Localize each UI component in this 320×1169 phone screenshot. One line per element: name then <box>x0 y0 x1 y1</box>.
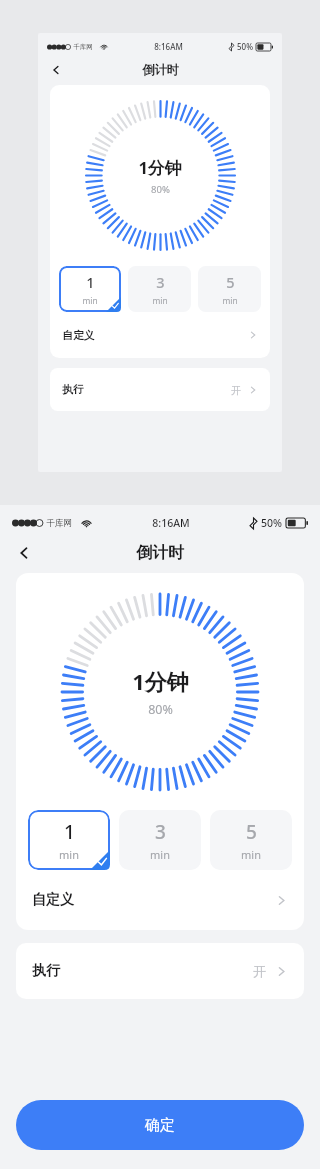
staticText: 确定 <box>145 1116 175 1135</box>
staticText: min <box>152 295 168 306</box>
staticText: 倒计时 <box>142 62 179 77</box>
staticText: 80% <box>148 701 173 718</box>
button[interactable]: 自定义 <box>50 312 270 358</box>
staticText: 开 <box>253 963 266 979</box>
staticText: 1 <box>64 819 75 845</box>
staticText: 执行 <box>32 962 60 980</box>
button[interactable]: 1 <box>59 266 121 312</box>
button[interactable]: 自定义 <box>16 870 304 930</box>
staticText: 50% <box>261 516 282 530</box>
button[interactable]: 执行 <box>16 943 304 999</box>
staticText: 80% <box>151 183 170 196</box>
staticText: min <box>241 847 261 862</box>
button[interactable]: 执行 <box>50 368 270 411</box>
staticText: 50% <box>237 41 253 52</box>
staticText: 5 <box>226 273 235 293</box>
staticText: min <box>59 847 79 862</box>
button[interactable]: 5 <box>210 810 292 870</box>
button[interactable]: 确定 <box>16 1100 304 1150</box>
staticText: min <box>150 847 170 862</box>
staticText: 3 <box>156 273 165 293</box>
staticText: 1 <box>86 273 95 293</box>
staticText: 3 <box>155 819 166 845</box>
staticText: 执行 <box>62 383 84 396</box>
staticText: 自定义 <box>62 329 95 342</box>
staticText: 千库网 <box>73 43 93 51</box>
button[interactable]: Back <box>44 58 68 82</box>
staticText: 自定义 <box>32 891 74 909</box>
staticText: 8:16AM <box>152 516 190 530</box>
button[interactable]: 5 <box>198 266 261 312</box>
staticText: 倒计时 <box>136 543 184 563</box>
button[interactable]: Back <box>8 537 40 569</box>
staticText: min <box>82 295 98 306</box>
staticText: 开 <box>231 384 241 396</box>
staticText: 1分钟 <box>132 666 189 696</box>
staticText: 8:16AM <box>154 41 183 52</box>
staticText: 5 <box>246 819 257 845</box>
button[interactable]: 3 <box>128 266 191 312</box>
staticText: min <box>222 295 238 306</box>
button[interactable]: 1 <box>28 810 110 870</box>
staticText: 1分钟 <box>138 156 182 179</box>
button[interactable]: 3 <box>119 810 201 870</box>
staticText: 千库网 <box>46 518 72 529</box>
